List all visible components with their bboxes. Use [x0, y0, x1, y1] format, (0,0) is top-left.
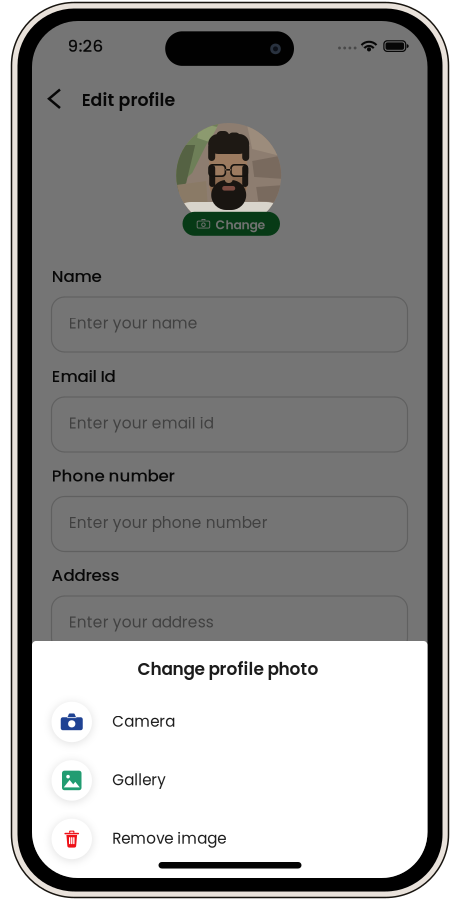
- button[interactable]: Remove image: [32, 809, 427, 868]
- staticText: Enter your address: [69, 611, 214, 633]
- staticText: Enter your email id: [69, 412, 214, 434]
- staticText: Enter your name: [69, 312, 198, 334]
- staticText: Name: [51, 264, 101, 288]
- staticText: Phone number: [51, 464, 174, 487]
- button[interactable]: Camera: [32, 692, 427, 751]
- staticText: 9:26: [67, 34, 103, 57]
- button[interactable]: Change: [182, 212, 280, 236]
- staticText: Remove image: [112, 828, 226, 849]
- button[interactable]: Gallery: [32, 751, 427, 810]
- staticText: Change profile photo: [137, 657, 318, 681]
- staticText: Email Id: [51, 364, 115, 388]
- staticText: Enter your phone number: [69, 512, 268, 533]
- staticText: Address: [51, 563, 119, 587]
- staticText: Gallery: [112, 769, 165, 790]
- staticText: Camera: [112, 711, 175, 732]
- staticText: Edit profile: [82, 88, 176, 112]
- button[interactable]: Back: [38, 79, 76, 119]
- staticText: Change: [215, 216, 265, 234]
